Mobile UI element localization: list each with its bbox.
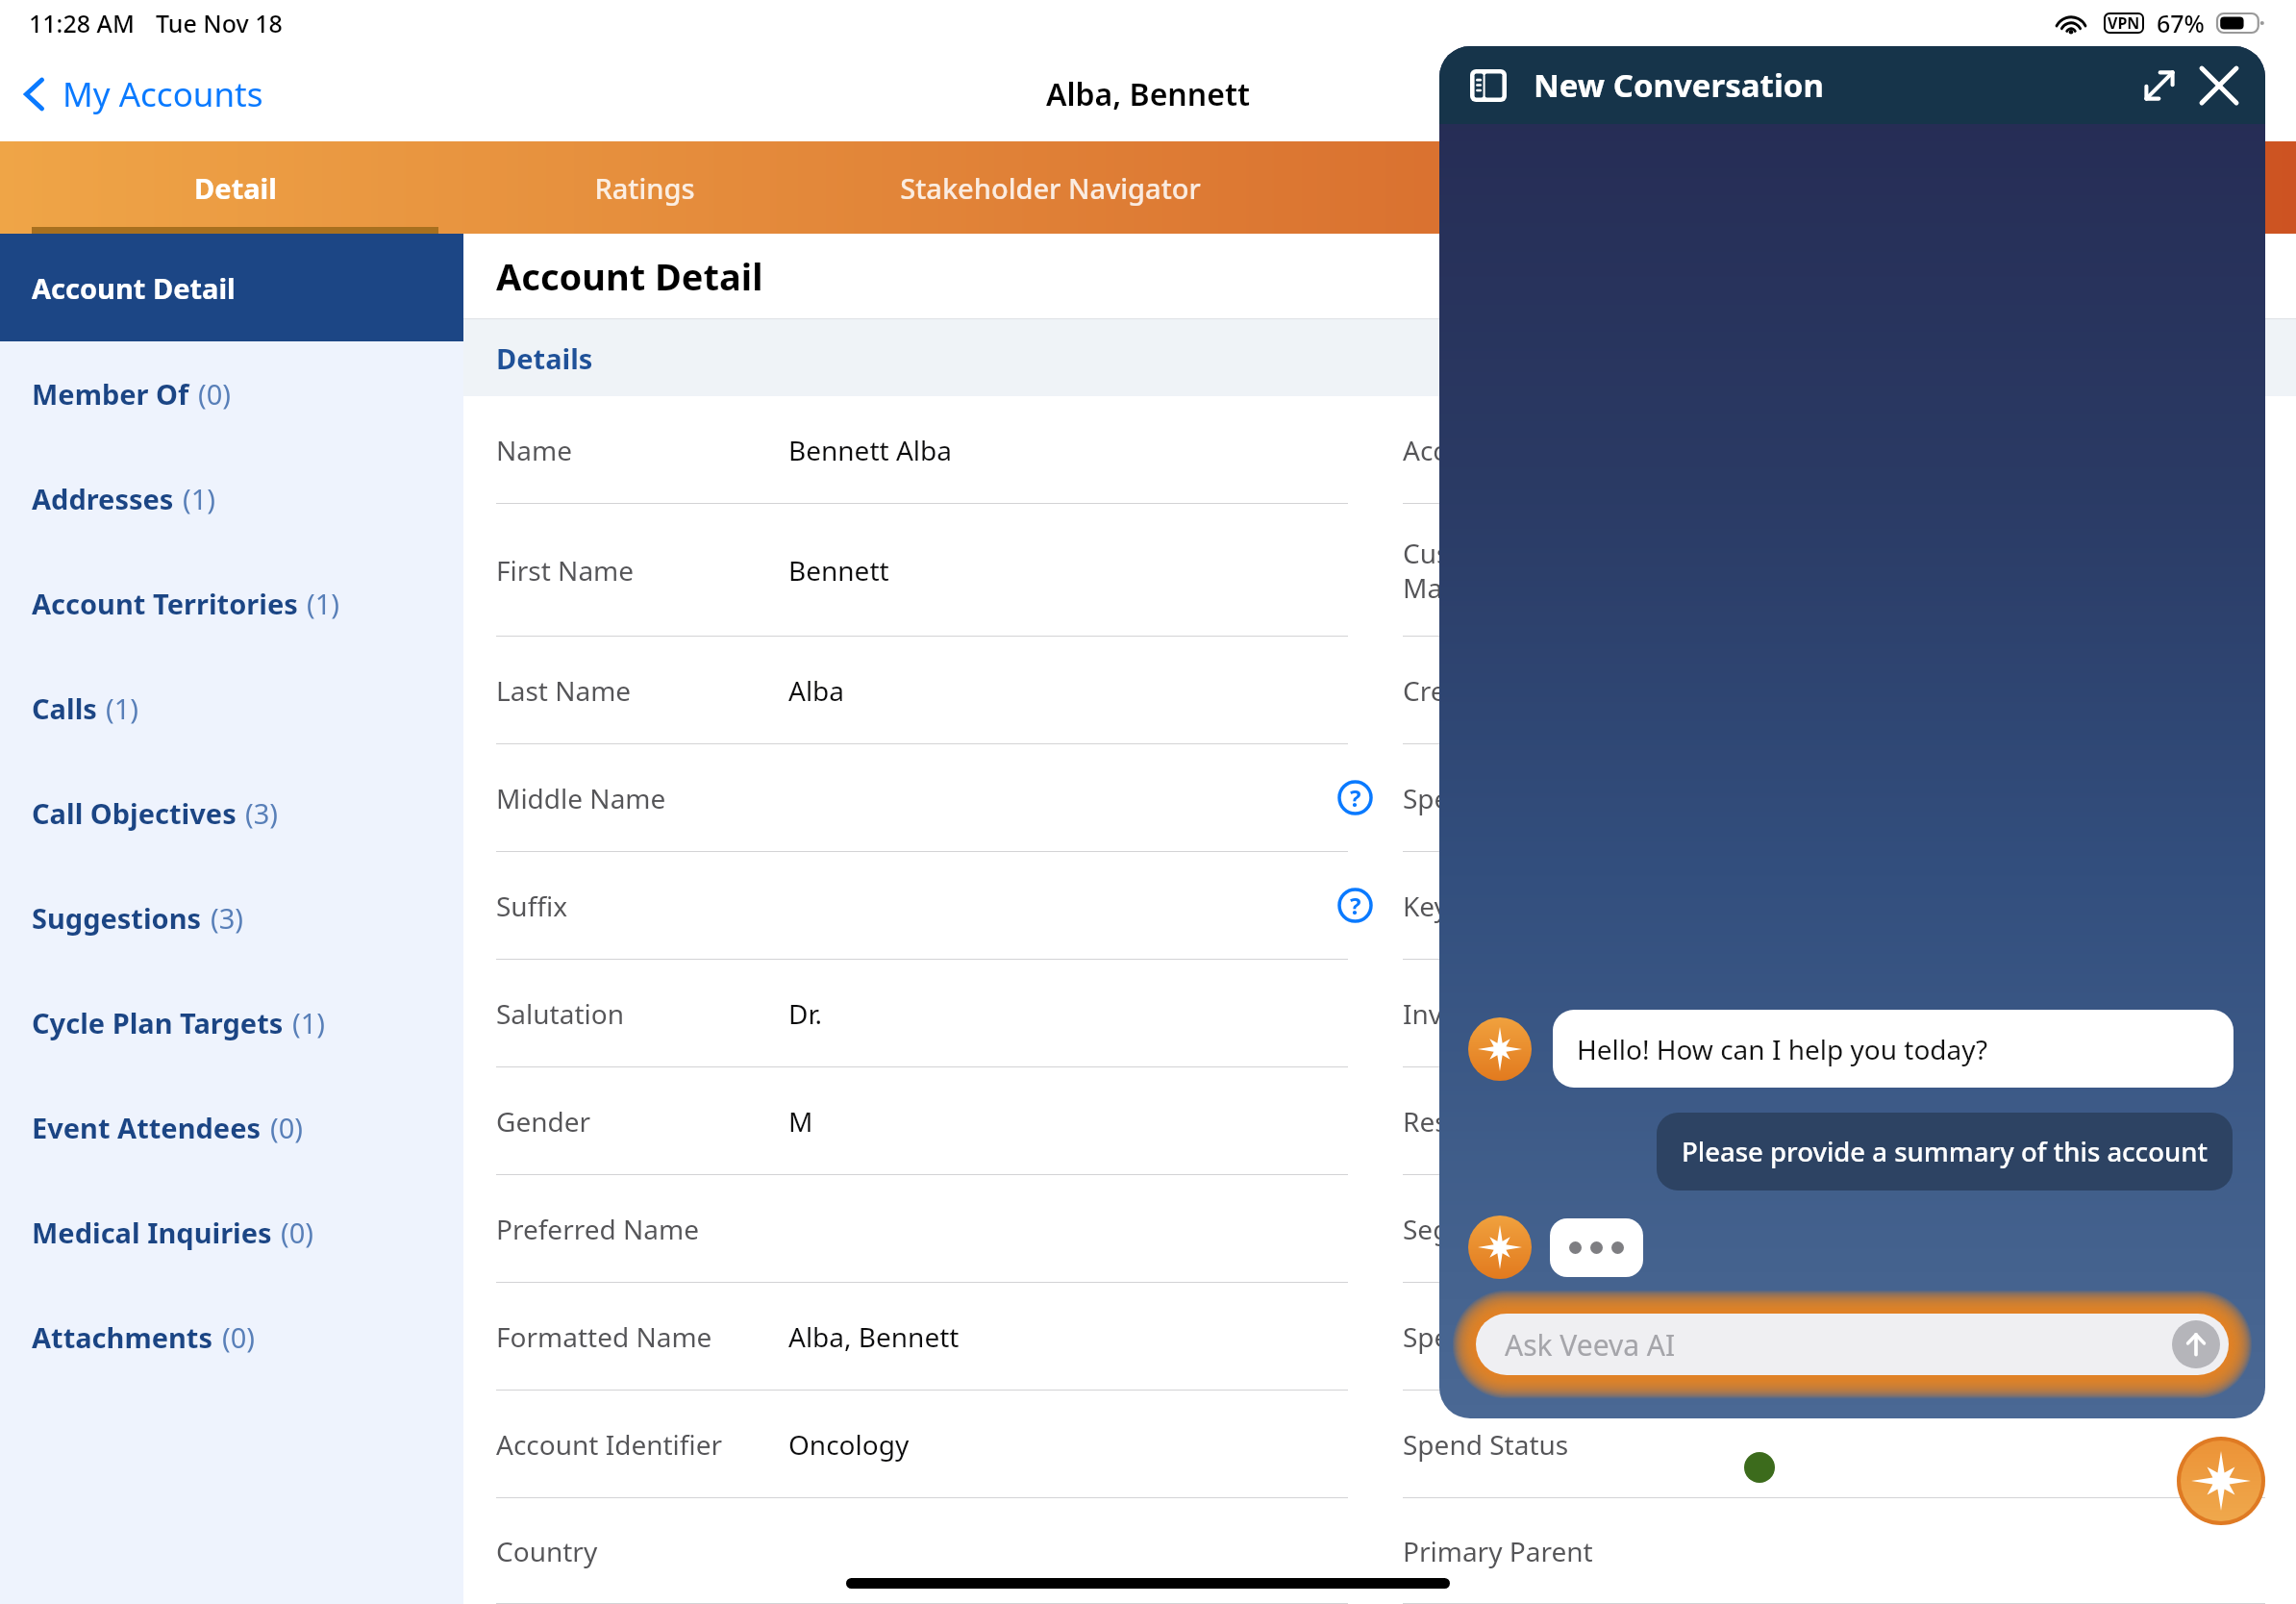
staticText: Suffix [496, 888, 567, 924]
button[interactable]: Customer Master Status [1402, 504, 2296, 637]
staticText: Key Opinion Leader [1403, 888, 1651, 924]
staticText: ? [1350, 782, 1361, 814]
button[interactable]: Event Attendees [0, 1075, 463, 1180]
staticText: Ratings [594, 169, 695, 207]
staticText: Details [496, 339, 593, 377]
staticText: Please provide a summary of this account [1682, 1134, 2208, 1169]
staticText: Formatted Name [496, 1318, 712, 1355]
staticText: Primary Parent [1403, 1533, 1593, 1569]
button[interactable]: Suggestions [0, 865, 463, 970]
button[interactable]: Member Of [0, 341, 463, 446]
button[interactable]: Ask Veeva AI [1476, 1314, 2229, 1375]
staticText: Credentials [1403, 672, 1546, 709]
button[interactable]: First Name [463, 504, 1402, 637]
staticText: Segment [1403, 1211, 1516, 1247]
staticText: Account Detail [496, 251, 763, 301]
button[interactable]: Account Type [1402, 396, 2296, 504]
staticText: First Name [496, 552, 635, 589]
button[interactable]: Help [1337, 888, 1373, 923]
button[interactable]: Close [2196, 63, 2242, 109]
staticText: (1) [106, 689, 138, 727]
staticText: Bennett Alba [788, 432, 952, 468]
staticText: Account Type [1403, 432, 1573, 468]
button[interactable]: Credentials [1402, 637, 2296, 744]
staticText: Addresses [32, 480, 174, 517]
staticText: Calls [32, 689, 97, 727]
button[interactable]: My Accounts [21, 71, 263, 117]
button[interactable]: Salutation [463, 960, 1402, 1067]
button[interactable]: Segment [1402, 1175, 2296, 1283]
button[interactable]: Preferred Name [463, 1175, 1402, 1283]
button[interactable]: Restricted Products [1402, 1067, 2296, 1175]
staticText: Call Objectives [32, 794, 237, 832]
staticText: Stakeholder Navigator [900, 169, 1201, 207]
staticText: Dr. [788, 995, 823, 1032]
staticText: Detail [194, 169, 277, 207]
button[interactable]: Ratings [471, 141, 817, 234]
staticText: (0) [270, 1109, 303, 1146]
staticText: Salutation [496, 995, 625, 1032]
button[interactable]: Addresses [0, 446, 463, 551]
staticText: Hello! How can I help you today? [1577, 1031, 1988, 1067]
button[interactable]: Attachments [0, 1285, 463, 1390]
staticText: (3) [245, 794, 278, 832]
staticText: (0) [222, 1318, 255, 1356]
button[interactable]: Stakeholder Navigator [817, 141, 1283, 234]
staticText: Suggestions [32, 899, 202, 937]
staticText: (1) [183, 480, 215, 517]
button[interactable]: Calls [0, 656, 463, 761]
staticText: Medical Inquiries [32, 1214, 272, 1251]
staticText: Country [496, 1533, 598, 1569]
button[interactable]: Medical Inquiries [0, 1180, 463, 1285]
button[interactable]: Spend Status [1402, 1391, 2296, 1498]
staticText: Spend Status [1403, 1426, 1569, 1463]
button[interactable]: Account Identifier [463, 1391, 1402, 1498]
staticText: Ask Veeva AI [1505, 1325, 1676, 1365]
button[interactable]: Expand [2136, 63, 2183, 109]
button[interactable]: Gender [463, 1067, 1402, 1175]
button[interactable]: Key Opinion Leader [1402, 852, 2296, 960]
staticText: ? [1350, 890, 1361, 921]
staticText: (0) [198, 375, 231, 413]
button[interactable]: Cycle Plan Targets [0, 970, 463, 1075]
staticText: Bennett [788, 552, 889, 589]
button[interactable]: Primary Parent [1402, 1498, 2296, 1604]
staticText: Gender [496, 1103, 591, 1140]
staticText: (3) [211, 899, 243, 937]
staticText: 11:28 AM [29, 7, 135, 39]
button[interactable]: Suffix [463, 852, 1402, 960]
staticText: (0) [281, 1214, 313, 1251]
button[interactable]: Specialty 1 [1402, 744, 2296, 852]
staticText: Customer Master Status [1403, 535, 1578, 606]
button[interactable]: Veeva AI assistant [2177, 1437, 2265, 1525]
staticText: (1) [292, 1004, 325, 1041]
staticText: Restricted Products [1403, 1103, 1649, 1140]
button[interactable]: Name [463, 396, 1402, 504]
staticText: Account Territories [32, 585, 298, 622]
staticText: Event Attendees [32, 1109, 262, 1146]
staticText: Account Detail [32, 269, 236, 307]
button[interactable]: Specialty 2 [1402, 1283, 2296, 1391]
staticText: Alba, Bennett [788, 1318, 960, 1355]
button[interactable]: Country [463, 1498, 1402, 1604]
button[interactable]: Call Objectives [0, 761, 463, 865]
staticText: Investigator [1403, 995, 1557, 1032]
staticText: Oncology [788, 1426, 910, 1463]
button[interactable]: Formatted Name [463, 1283, 1402, 1391]
button[interactable]: Help [1337, 780, 1373, 815]
staticText: Middle Name [496, 780, 666, 816]
button[interactable]: Last Name [463, 637, 1402, 744]
button[interactable]: Investigator [1402, 960, 2296, 1067]
staticText: Preferred Name [496, 1211, 699, 1247]
staticText: 67% [2157, 7, 2205, 39]
staticText: Specialty 1 [1403, 780, 1537, 816]
button[interactable]: Account Territories [0, 551, 463, 656]
staticText: M [788, 1103, 813, 1140]
button[interactable]: Middle Name [463, 744, 1402, 852]
staticText: Tue Nov 18 [156, 7, 283, 39]
button[interactable]: Account Detail [0, 234, 463, 341]
button[interactable]: Detail [0, 141, 471, 234]
button[interactable]: Send [2172, 1320, 2220, 1368]
staticText: Name [496, 432, 572, 468]
button[interactable]: Toggle sidebar [1470, 69, 1507, 102]
